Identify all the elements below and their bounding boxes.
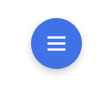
button[interactable]: Open menu	[31, 18, 82, 69]
